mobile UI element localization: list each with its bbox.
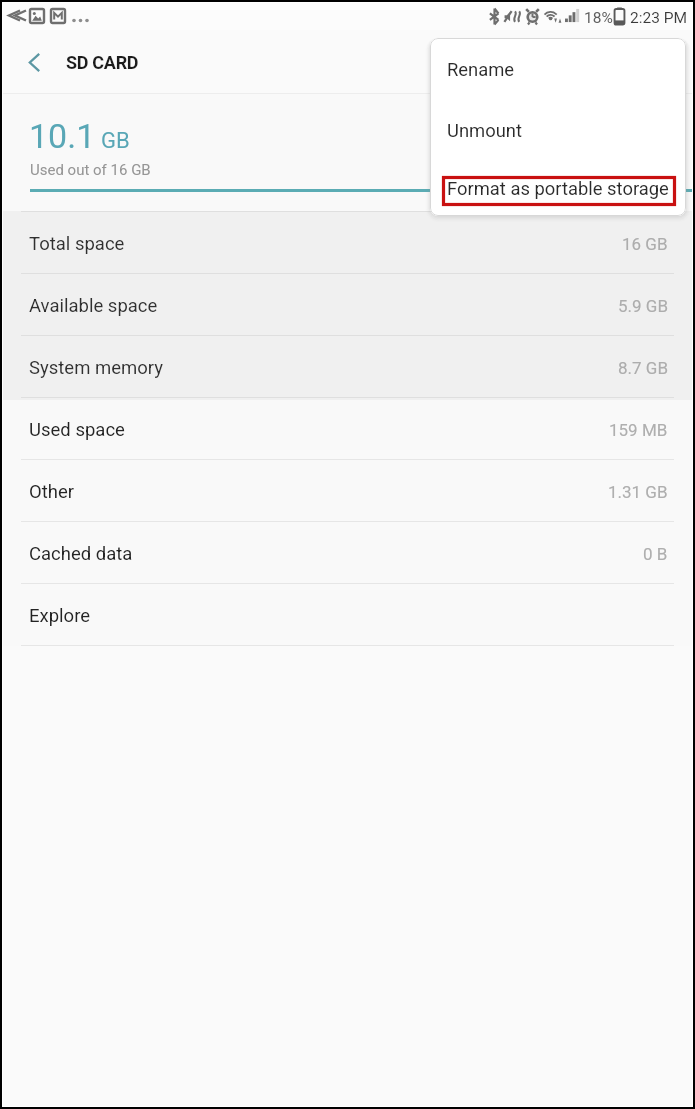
staticText: Rename <box>447 59 515 81</box>
staticText: Cached data <box>29 543 133 565</box>
staticText: 18% <box>584 9 613 27</box>
button[interactable]: Available space <box>3 273 692 335</box>
staticText: Format as portable storage <box>447 178 669 200</box>
button[interactable]: Navigate up <box>3 30 66 94</box>
button[interactable]: Total space <box>3 211 692 273</box>
staticText: Other <box>29 481 75 503</box>
staticText: Available space <box>29 295 158 317</box>
staticText: SD CARD <box>66 52 139 73</box>
staticText: GB <box>101 128 130 154</box>
button[interactable]: Other <box>3 459 692 521</box>
staticText: 8.7 GB <box>618 358 668 378</box>
staticText: 10.1 <box>29 116 96 156</box>
button[interactable]: System memory <box>3 335 692 397</box>
staticText: 0 B <box>643 544 668 564</box>
staticText: 1.31 GB <box>608 482 668 502</box>
button[interactable]: Rename <box>430 38 686 100</box>
staticText: Unmount <box>447 120 523 142</box>
staticText: 5.9 GB <box>618 296 668 316</box>
button[interactable]: Unmount <box>430 100 686 160</box>
staticText: Explore <box>29 605 91 627</box>
staticText: 16 GB <box>622 234 668 254</box>
staticText: Used out of 16 GB <box>30 161 151 179</box>
staticText: Total space <box>29 233 125 255</box>
button[interactable]: Format as portable storage <box>430 160 686 216</box>
staticText: Used space <box>29 419 125 441</box>
staticText: System memory <box>29 357 163 379</box>
staticText: 159 MB <box>609 420 668 440</box>
button[interactable]: Cached data <box>3 521 692 583</box>
button[interactable]: Explore <box>3 583 692 645</box>
button[interactable]: Used space <box>3 397 692 459</box>
staticText: 2:23 PM <box>630 9 688 27</box>
